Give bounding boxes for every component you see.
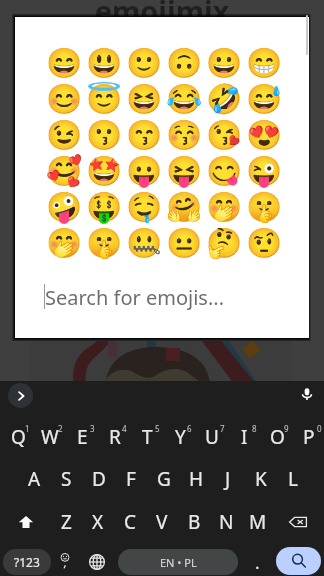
button[interactable]: W: [34, 416, 66, 458]
button[interactable]: 😉: [46, 117, 82, 153]
button[interactable]: 😆: [126, 81, 162, 117]
button[interactable]: J: [212, 458, 244, 500]
button[interactable]: I: [228, 416, 260, 458]
staticText: 🤑: [86, 190, 122, 224]
staticText: 😇: [86, 82, 122, 116]
button[interactable]: 😚: [166, 117, 202, 153]
staticText: 😋: [206, 154, 242, 188]
button[interactable]: T: [131, 416, 163, 458]
button[interactable]: 🤑: [86, 189, 122, 225]
staticText: K: [255, 466, 267, 492]
button[interactable]: 😄: [46, 45, 82, 81]
button[interactable]: 🤨: [246, 225, 282, 261]
button[interactable]: R: [99, 416, 131, 458]
button[interactable]: EN • PL: [118, 549, 238, 575]
staticText: F: [126, 466, 136, 492]
staticText: Q: [11, 424, 26, 450]
button[interactable]: Q: [2, 416, 34, 458]
staticText: 🤨: [246, 226, 282, 260]
button[interactable]: S: [50, 458, 82, 500]
button[interactable]: P: [293, 416, 324, 458]
button[interactable]: Backspace: [282, 501, 314, 543]
button[interactable]: 🤣: [206, 81, 242, 117]
staticText: 🤐: [126, 226, 162, 260]
button[interactable]: 🤫: [246, 189, 282, 225]
button[interactable]: .: [245, 549, 269, 575]
staticText: I: [241, 424, 248, 450]
button[interactable]: 🙃: [166, 45, 202, 81]
button[interactable]: E: [66, 416, 98, 458]
button[interactable]: Expand suggestions: [8, 383, 33, 408]
button[interactable]: Search for emojis...: [15, 283, 309, 338]
button[interactable]: 😗: [86, 117, 122, 153]
button[interactable]: Change language: [84, 549, 110, 575]
button[interactable]: 😛: [126, 153, 162, 189]
staticText: 😐: [166, 226, 202, 260]
button[interactable]: M: [242, 501, 274, 543]
button[interactable]: 🤔: [206, 225, 242, 261]
staticText: 3: [90, 423, 95, 434]
button[interactable]: 😍: [246, 117, 282, 153]
button[interactable]: O: [261, 416, 293, 458]
button[interactable]: 😝: [166, 153, 202, 189]
staticText: 5: [155, 423, 160, 434]
staticText: D: [92, 466, 106, 492]
button[interactable]: ?123: [3, 549, 51, 575]
button[interactable]: 😅: [246, 81, 282, 117]
button[interactable]: 😃: [86, 45, 122, 81]
button[interactable]: 😁: [246, 45, 282, 81]
staticText: 😁: [246, 46, 282, 80]
button[interactable]: 😜: [246, 153, 282, 189]
staticText: 😀: [206, 46, 242, 80]
button[interactable]: Search: [276, 547, 321, 575]
button[interactable]: 🤪: [46, 189, 82, 225]
button[interactable]: G: [148, 458, 180, 500]
staticText: 😄: [46, 46, 82, 80]
button[interactable]: 😋: [206, 153, 242, 189]
button[interactable]: 🤤: [126, 189, 162, 225]
button[interactable]: 😙: [126, 117, 162, 153]
button[interactable]: N: [210, 501, 242, 543]
staticText: 😚: [166, 118, 202, 152]
button[interactable]: 😐: [166, 225, 202, 261]
button[interactable]: Y: [164, 416, 196, 458]
button[interactable]: 🤩: [86, 153, 122, 189]
staticText: Z: [61, 509, 72, 535]
button[interactable]: Voice input: [294, 381, 320, 407]
button[interactable]: 😂: [166, 81, 202, 117]
button[interactable]: V: [146, 501, 178, 543]
button[interactable]: X: [82, 501, 114, 543]
button[interactable]: 🤗: [166, 189, 202, 225]
button[interactable]: 🙂: [126, 45, 162, 81]
button[interactable]: H: [180, 458, 212, 500]
staticText: 🤭: [206, 190, 242, 224]
staticText: 🙃: [166, 46, 202, 80]
button[interactable]: L: [277, 458, 309, 500]
button[interactable]: 😇: [86, 81, 122, 117]
staticText: 😅: [246, 82, 282, 116]
button[interactable]: C: [114, 501, 146, 543]
button[interactable]: D: [83, 458, 115, 500]
button[interactable]: Emoji: [52, 546, 78, 576]
button[interactable]: A: [18, 458, 50, 500]
staticText: 😃: [86, 46, 122, 80]
staticText: S: [61, 466, 72, 492]
button[interactable]: F: [115, 458, 147, 500]
staticText: 🤤: [126, 190, 162, 224]
button[interactable]: 🤐: [126, 225, 162, 261]
button[interactable]: 😀: [206, 45, 242, 81]
staticText: T: [142, 424, 153, 450]
button[interactable]: 🥰: [46, 153, 82, 189]
button[interactable]: U: [196, 416, 228, 458]
button[interactable]: K: [245, 458, 277, 500]
button[interactable]: Shift: [10, 501, 42, 543]
staticText: M: [249, 509, 267, 535]
button[interactable]: 🤭: [46, 225, 82, 261]
button[interactable]: 🤭: [206, 189, 242, 225]
staticText: V: [156, 509, 168, 535]
button[interactable]: Z: [50, 501, 82, 543]
button[interactable]: 😊: [46, 81, 82, 117]
button[interactable]: 😘: [206, 117, 242, 153]
button[interactable]: B: [178, 501, 210, 543]
button[interactable]: 🤫: [86, 225, 122, 261]
